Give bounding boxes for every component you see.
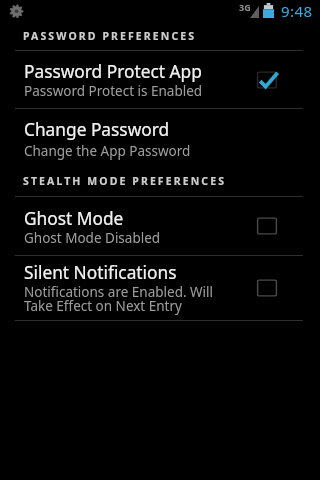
staticText: Password Protect is Enabled: [24, 82, 203, 100]
button[interactable]: Ghost Mode: [0, 197, 320, 255]
button[interactable]: Password Protect App: [0, 51, 320, 108]
staticText: PASSWORD PREFERENCES: [23, 29, 197, 43]
button[interactable]: Checkbox, checked: [240, 58, 294, 102]
staticText: Ghost Mode Disabled: [24, 229, 161, 247]
staticText: Silent Notifications: [24, 261, 177, 285]
staticText: Change Password: [24, 118, 170, 142]
other: Notification: [10, 4, 23, 17]
staticText: 3G: [239, 1, 251, 13]
staticText: Notifications are Enabled. Will: [24, 283, 214, 301]
staticText: STEALTH MODE PREFERENCES: [23, 174, 227, 188]
staticText: Password Protect App: [24, 60, 202, 84]
staticText: Ghost Mode: [24, 207, 124, 231]
button[interactable]: Silent Notifications: [0, 256, 320, 320]
staticText: 9:48: [281, 1, 313, 21]
staticText: Change the App Password: [24, 142, 191, 160]
staticText: Take Effect on Next Entry: [24, 297, 182, 315]
button[interactable]: Checkbox, unchecked: [240, 266, 294, 310]
button[interactable]: Change Password: [0, 109, 320, 166]
button[interactable]: Checkbox, unchecked: [240, 204, 294, 248]
